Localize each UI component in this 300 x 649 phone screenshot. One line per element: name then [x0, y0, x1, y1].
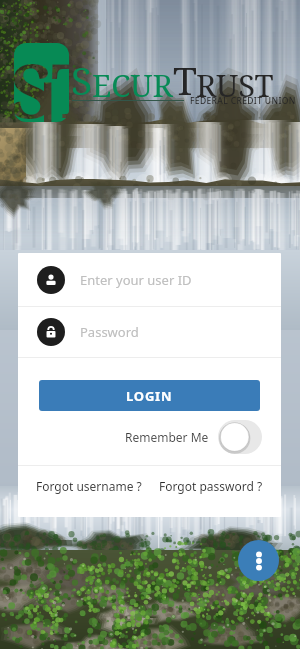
button[interactable]: Forgot username ? — [36, 478, 142, 494]
staticText: S — [71, 53, 93, 106]
button[interactable]: LOGIN — [39, 380, 260, 411]
button[interactable]: More options — [238, 540, 279, 581]
staticText: ECUR — [92, 64, 173, 106]
button[interactable] — [218, 420, 262, 454]
button[interactable]: Password — [37, 307, 281, 357]
staticText: Remember Me — [125, 429, 209, 445]
staticText: Password — [80, 323, 139, 341]
staticText: RUST — [196, 64, 274, 106]
staticText: LOGIN — [126, 387, 173, 405]
staticText: FEDERAL CREDIT UNION — [190, 95, 296, 107]
staticText: Enter your user ID — [80, 271, 192, 289]
button[interactable]: Enter your user ID — [37, 253, 281, 306]
staticText: T — [173, 53, 197, 106]
button[interactable]: Forgot password ? — [159, 478, 263, 494]
